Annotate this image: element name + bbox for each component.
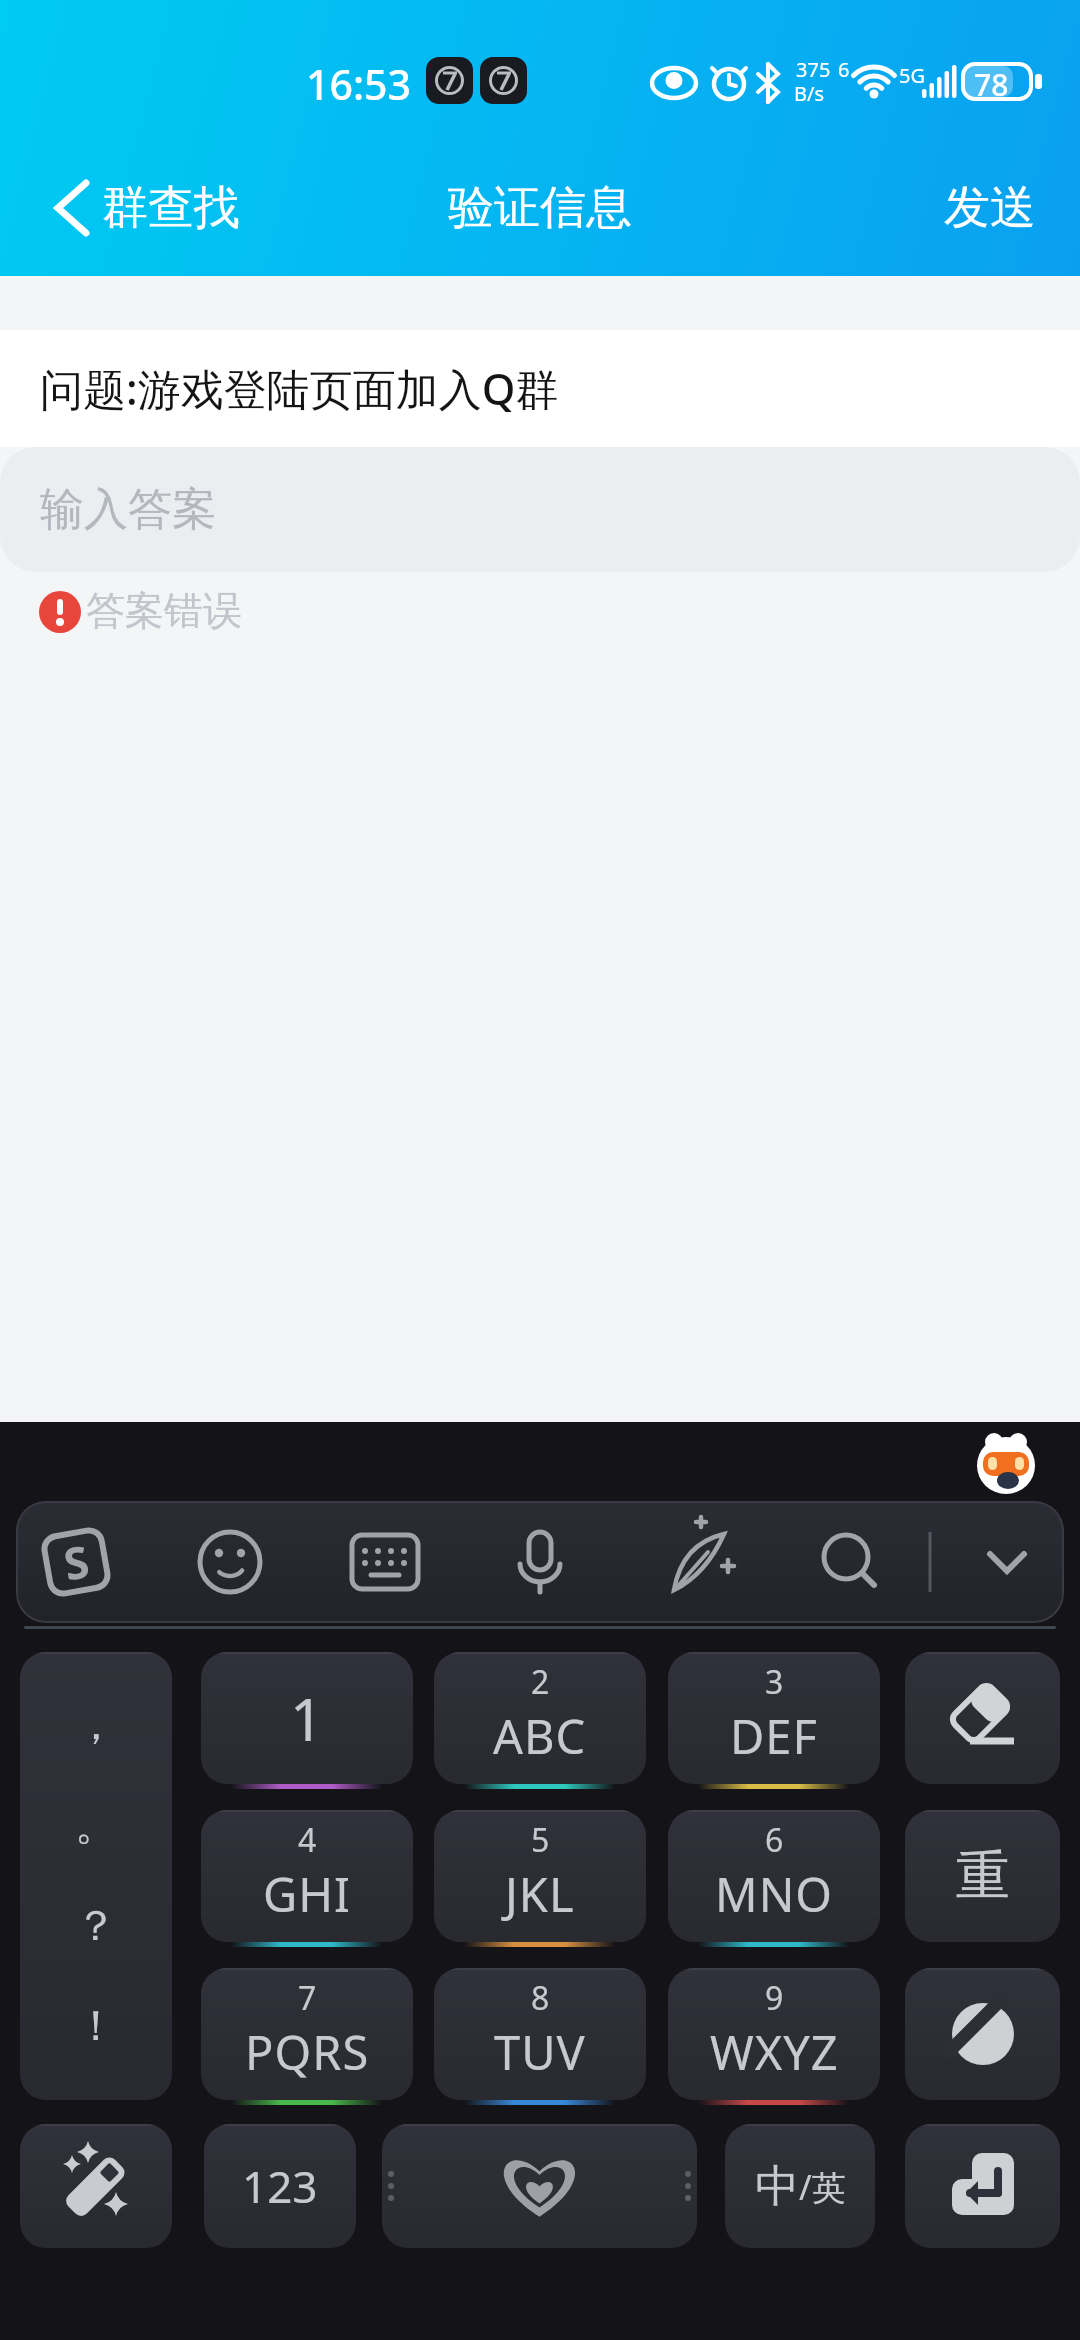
button[interactable]: 中 (725, 2124, 875, 2248)
staticText: PQRS (245, 2020, 370, 2084)
button[interactable]: ， (20, 1652, 172, 2100)
button[interactable] (201, 1517, 291, 1607)
staticText: ABC (493, 1704, 587, 1768)
button[interactable]: 6 (668, 1810, 880, 1942)
staticText: MNO (715, 1862, 834, 1926)
staticText: 中 (755, 2159, 799, 2214)
staticText: 发送 (944, 179, 1036, 237)
button[interactable]: 8 (434, 1968, 646, 2100)
staticText: 2 (531, 1660, 550, 1704)
staticText: 答案错误 (86, 586, 242, 634)
button[interactable] (905, 1968, 1060, 2100)
button[interactable] (905, 1652, 1060, 1784)
staticText: 5G (899, 62, 925, 89)
staticText: 输入答案 (40, 482, 216, 537)
staticText: 9 (765, 1976, 784, 2020)
staticText: 5 (531, 1818, 550, 1862)
staticText: TUV (494, 2020, 586, 2084)
staticText: 群查找 (102, 179, 240, 237)
button[interactable]: 9 (668, 1968, 880, 2100)
button[interactable] (905, 2124, 1060, 2248)
staticText: 123 (242, 2156, 318, 2216)
button[interactable] (971, 1517, 1061, 1607)
staticText: 78 (974, 64, 1009, 105)
staticText: ！ (75, 2000, 117, 2053)
staticText: 6 (765, 1818, 784, 1862)
button[interactable]: 5 (434, 1810, 646, 1942)
button[interactable]: 4 (201, 1810, 413, 1942)
button[interactable]: 2 (434, 1652, 646, 1784)
button[interactable]: 重 (905, 1810, 1060, 1942)
button[interactable]: 123 (204, 2124, 356, 2248)
staticText: 8 (531, 1976, 550, 2020)
button[interactable]: 发送 (920, 170, 1060, 246)
staticText: 验证信息 (448, 179, 632, 237)
button[interactable]: 群查找 (44, 170, 240, 246)
staticText: B/s (794, 80, 825, 107)
staticText: S (59, 1530, 94, 1594)
staticText: WXYZ (710, 2020, 839, 2084)
button[interactable]: 1 (201, 1652, 413, 1784)
staticText: 4 (298, 1818, 317, 1862)
button[interactable] (669, 1517, 759, 1607)
staticText: 1 (290, 1679, 324, 1758)
button[interactable] (511, 1517, 601, 1607)
staticText: 重 (956, 1842, 1010, 1910)
staticText: 3 (765, 1660, 784, 1704)
button[interactable]: 7 (201, 1968, 413, 2100)
staticText: 6 (838, 56, 850, 83)
staticText: ？ (75, 1900, 117, 1953)
staticText: 。 (75, 1799, 117, 1852)
staticText: /英 (799, 2164, 846, 2210)
button[interactable]: S (39, 1525, 113, 1599)
button[interactable] (20, 2124, 172, 2248)
staticText: 问题:游戏登陆页面加入Q群 (40, 359, 559, 418)
staticText: JKL (505, 1862, 575, 1926)
button[interactable] (356, 1517, 446, 1607)
staticText: 7 (298, 1976, 317, 2020)
staticText: 16:53 (306, 56, 411, 112)
button[interactable] (382, 2124, 697, 2248)
button[interactable]: 3 (668, 1652, 880, 1784)
staticText: ， (75, 1699, 117, 1752)
button[interactable] (821, 1517, 911, 1607)
staticText: DEF (730, 1704, 818, 1768)
button[interactable]: 输入答案 (0, 447, 1080, 572)
staticText: GHI (263, 1862, 351, 1926)
staticText: 375 (796, 56, 831, 83)
